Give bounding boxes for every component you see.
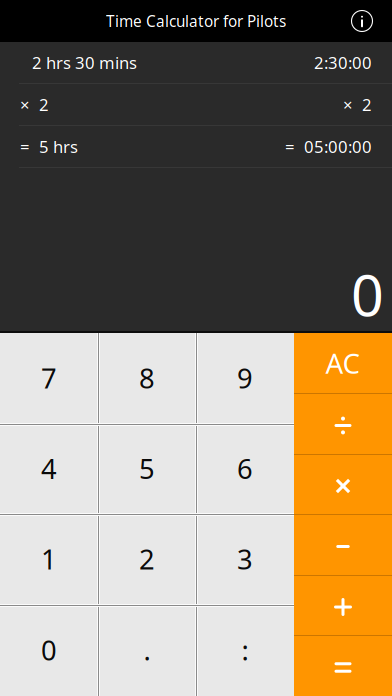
staticText: . — [143, 631, 150, 669]
button[interactable]: 7 — [0, 333, 98, 424]
staticText: 8 — [139, 359, 155, 397]
button[interactable]: : — [196, 605, 294, 696]
staticText: × — [20, 93, 30, 116]
button[interactable]: 2 — [98, 514, 196, 605]
button[interactable]: 0 — [0, 605, 98, 696]
button[interactable]: Equals — [294, 635, 392, 696]
button[interactable]: 6 — [196, 424, 294, 514]
button[interactable]: 8 — [98, 333, 196, 424]
staticText: : — [241, 631, 248, 669]
staticText: AC — [325, 344, 360, 382]
button[interactable]: 3 — [196, 514, 294, 605]
button[interactable]: About this app — [340, 0, 384, 42]
staticText: 0 — [41, 631, 57, 669]
staticText: 2 — [139, 540, 155, 578]
button[interactable]: 5 — [98, 424, 196, 514]
staticText: 5 hrs — [39, 135, 78, 158]
staticText: = — [20, 135, 30, 158]
staticText: 3 — [237, 540, 253, 578]
staticText: 6 — [237, 450, 253, 487]
staticText: Time Calculator for Pilots — [106, 11, 286, 31]
staticText: 7 — [41, 359, 57, 397]
button[interactable]: . — [98, 605, 196, 696]
staticText: 4 — [41, 450, 57, 487]
button[interactable]: Add — [294, 575, 392, 635]
staticText: 1 — [41, 540, 57, 578]
button[interactable]: 1 — [0, 514, 98, 605]
staticText: × — [343, 93, 353, 116]
staticText: 0 — [351, 255, 384, 333]
staticText: 05:00:00 — [304, 135, 372, 158]
button[interactable]: Subtract — [294, 514, 392, 575]
button[interactable]: 9 — [196, 333, 294, 424]
staticText: 2 — [362, 93, 372, 116]
staticText: 9 — [237, 359, 253, 397]
button[interactable]: 4 — [0, 424, 98, 514]
staticText: 2:30:00 — [314, 51, 372, 74]
staticText: 5 — [139, 450, 155, 487]
button[interactable]: All clear — [294, 333, 392, 393]
staticText: 2 — [39, 93, 49, 116]
button[interactable]: Multiply — [294, 454, 392, 514]
button[interactable]: Divide — [294, 393, 392, 454]
staticText: = — [285, 135, 295, 158]
staticText: 2 hrs 30 mins — [32, 51, 137, 74]
